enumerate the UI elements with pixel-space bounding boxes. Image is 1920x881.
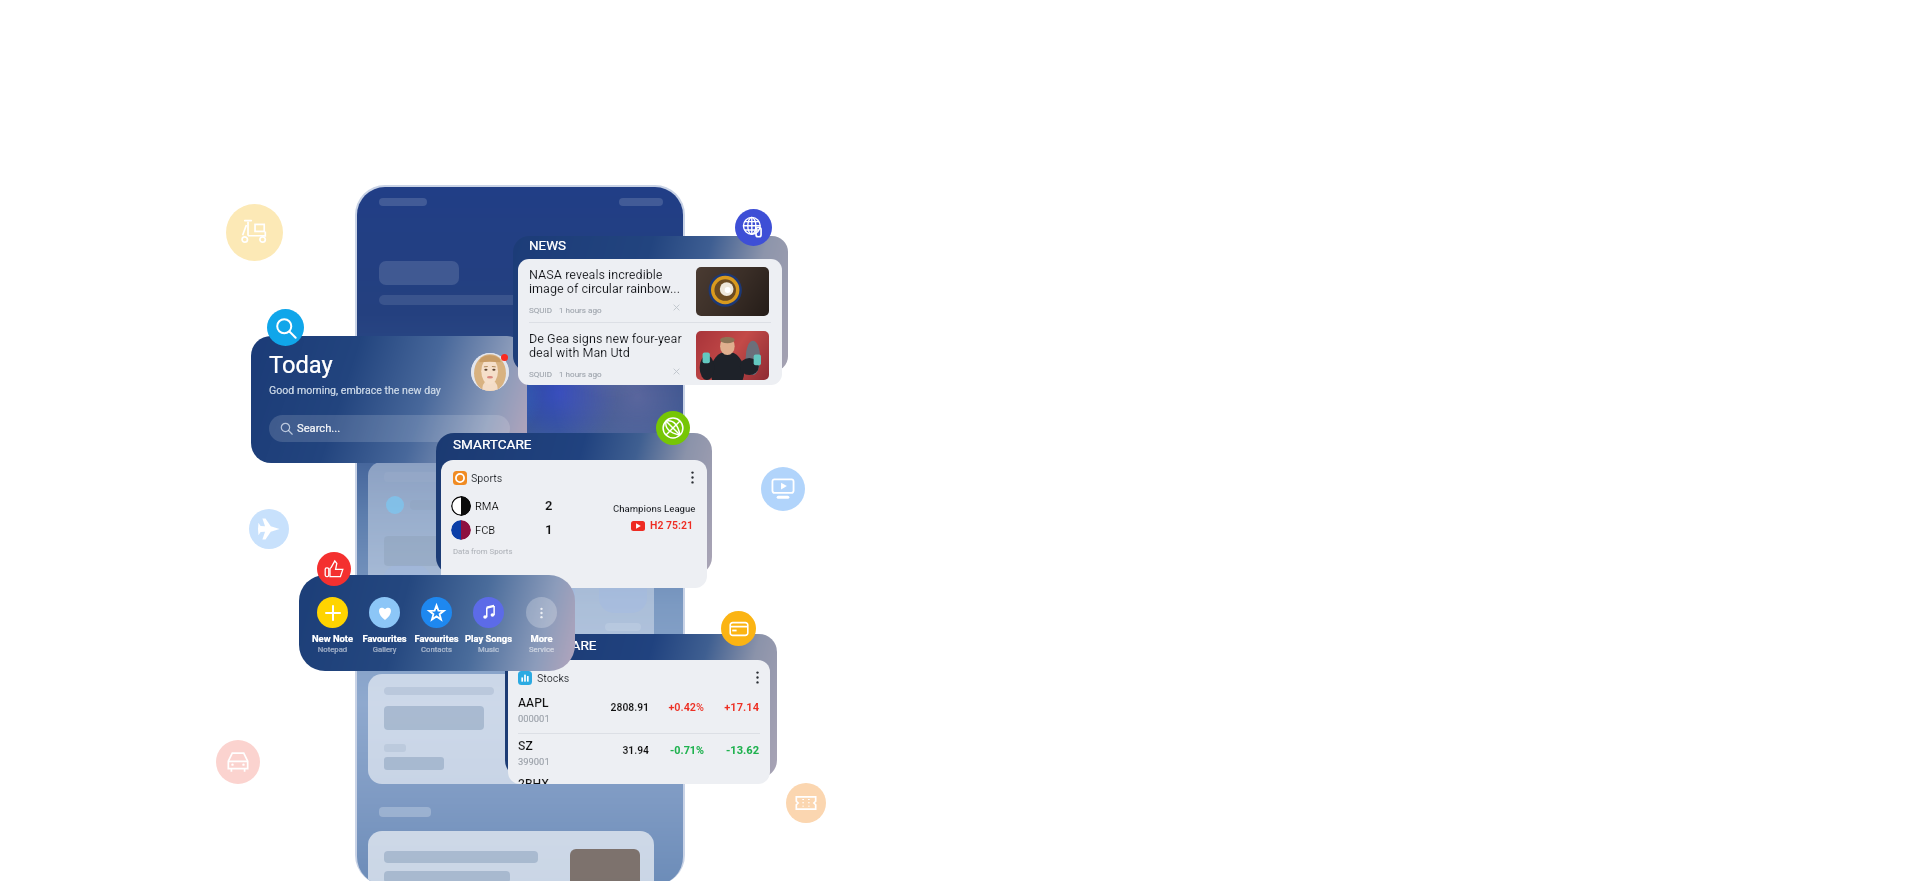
staticText: More <box>508 633 575 644</box>
staticText: Today <box>269 351 333 379</box>
staticText: SQUID <box>529 305 553 314</box>
staticText: Good morning, embrace the new day <box>269 384 441 396</box>
staticText: NEWS <box>529 238 566 254</box>
staticText: Champions League <box>613 503 696 514</box>
button[interactable]: Flights <box>249 509 289 549</box>
button[interactable]: Stocks <box>508 660 770 784</box>
button[interactable]: NASA reveals incredible image of circula… <box>518 259 782 322</box>
staticText: 1 hours ago <box>559 305 602 314</box>
staticText: NASA reveals incredible image of circula… <box>529 267 701 296</box>
staticText: 2 <box>545 498 553 513</box>
button[interactable]: Wallet <box>721 611 756 646</box>
staticText: Play Songs <box>455 633 522 644</box>
button[interactable]: Search <box>267 309 304 346</box>
button[interactable]: Delivery <box>226 204 283 261</box>
button[interactable]: More <box>508 597 575 659</box>
staticText: Sports <box>471 472 503 485</box>
staticText: SMARTCARE <box>453 436 532 452</box>
button[interactable]: Today <box>251 336 527 463</box>
button[interactable]: Travel <box>216 740 260 784</box>
button[interactable]: More options <box>753 668 762 687</box>
staticText: Notepad <box>299 645 366 654</box>
staticText: 000001 <box>518 713 550 724</box>
staticText: Music <box>455 645 522 654</box>
button[interactable]: SZ <box>508 735 770 776</box>
staticText: SZ <box>518 739 533 753</box>
button[interactable]: Video <box>761 467 805 511</box>
button[interactable]: Dismiss <box>670 301 683 314</box>
staticText: SQUID <box>529 369 553 378</box>
button[interactable]: New Note <box>299 597 366 659</box>
button[interactable]: More options <box>688 468 697 487</box>
button[interactable]: Sports <box>441 460 707 588</box>
staticText: -13.62 <box>708 744 759 757</box>
button[interactable]: AAPL <box>508 692 770 733</box>
staticText: 2BHX <box>518 777 550 784</box>
staticText: 2808.91 <box>588 701 649 713</box>
staticText: 1 hours ago <box>559 369 602 378</box>
button[interactable]: Favourites <box>403 597 470 659</box>
staticText: RMA <box>475 500 499 513</box>
staticText: New Note <box>299 633 366 644</box>
button[interactable]: Sports <box>656 411 690 445</box>
staticText: Data from Sports <box>453 547 513 556</box>
staticText: 31.94 <box>588 744 649 756</box>
button[interactable]: Dismiss <box>670 365 683 378</box>
staticText: Stocks <box>537 672 570 685</box>
button[interactable]: Profile <box>471 353 509 391</box>
staticText: H2 75:21 <box>650 519 694 531</box>
staticText: De Gea signs new four-year deal with Man… <box>529 331 701 360</box>
button[interactable]: Like <box>317 552 351 586</box>
button[interactable]: Tickets <box>786 783 826 823</box>
button[interactable]: Play Songs <box>455 597 522 659</box>
staticText: Search... <box>297 422 341 435</box>
button[interactable]: Favourites <box>351 597 418 659</box>
staticText: SMARTCARE <box>518 637 597 653</box>
staticText: Service <box>508 645 575 654</box>
staticText: 399001 <box>518 756 550 767</box>
staticText: +0.42% <box>653 701 704 714</box>
staticText: Contacts <box>403 645 470 654</box>
staticText: AAPL <box>518 696 549 710</box>
staticText: 1 <box>545 522 553 537</box>
staticText: -0.71% <box>653 744 704 757</box>
staticText: Gallery <box>351 645 418 654</box>
staticText: FCB <box>475 524 496 537</box>
button[interactable]: Search... <box>269 415 510 442</box>
staticText: Favourites <box>351 633 418 644</box>
button[interactable]: De Gea signs new four-year deal with Man… <box>518 323 782 385</box>
staticText: Favourites <box>403 633 470 644</box>
staticText: +17.14 <box>708 701 759 714</box>
button[interactable]: Browser <box>735 209 772 246</box>
